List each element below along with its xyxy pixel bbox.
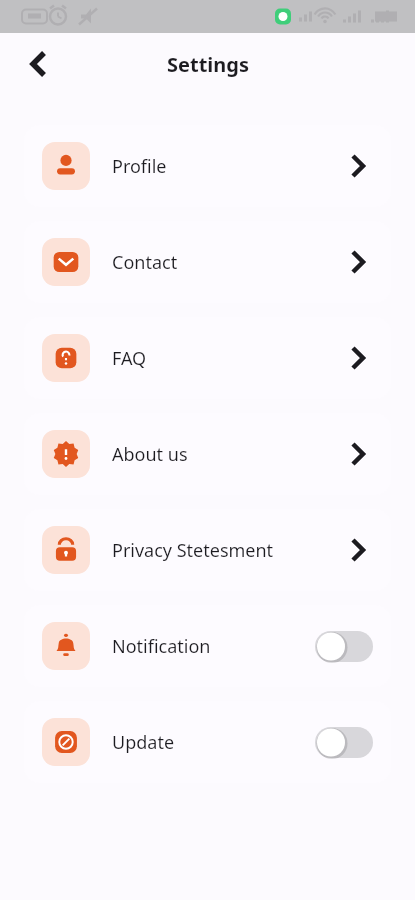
button[interactable]: Open FAQ — [343, 343, 373, 373]
button[interactable]: Open About us — [343, 439, 373, 469]
button[interactable]: Open Contact — [343, 247, 373, 277]
button[interactable]: Update — [24, 701, 391, 783]
button[interactable]: Open Privacy Stetesment — [343, 535, 373, 565]
button[interactable]: Contact — [24, 221, 391, 303]
button[interactable]: FAQ — [24, 317, 391, 399]
staticText: Contact — [112, 250, 178, 275]
staticText: Notification — [112, 634, 211, 659]
button[interactable]: Back — [18, 44, 58, 84]
button[interactable]: Privacy Stetesment — [24, 509, 391, 591]
staticText: FAQ — [112, 346, 147, 371]
staticText: About us — [112, 442, 188, 467]
button[interactable]: Open Profile — [343, 151, 373, 181]
button[interactable]: Profile — [24, 125, 391, 207]
button[interactable]: Toggle — [315, 631, 373, 662]
staticText: Profile — [112, 154, 167, 179]
staticText: Update — [112, 730, 175, 755]
button[interactable]: Toggle — [315, 727, 373, 758]
staticText: Privacy Stetesment — [112, 538, 274, 563]
button[interactable]: Notification — [24, 605, 391, 687]
button[interactable]: About us — [24, 413, 391, 495]
staticText: Settings — [167, 51, 249, 78]
